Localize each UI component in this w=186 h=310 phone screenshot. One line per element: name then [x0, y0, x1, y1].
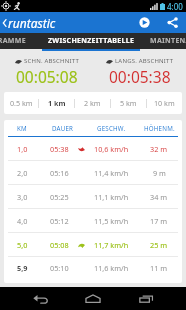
button[interactable]: ZWISCHENZEITTABELLE: [42, 33, 140, 49]
staticText: 1 km: [48, 98, 66, 108]
staticText: 11,1 km/h: [94, 192, 129, 202]
button[interactable]: 1 km: [39, 92, 74, 114]
staticText: 5,9: [17, 263, 28, 273]
staticText: 25 m: [150, 240, 168, 250]
staticText: MAINTENANCE: [150, 36, 186, 46]
staticText: KM: [17, 124, 27, 132]
button[interactable]: 5,0: [4, 233, 182, 256]
staticText: 05:16: [50, 168, 69, 178]
button[interactable]: 1,0: [4, 137, 182, 160]
staticText: ZWISCHENZEITTABELLE: [48, 36, 135, 46]
staticText: 5,0: [17, 240, 28, 250]
staticText: 1,0: [17, 144, 28, 154]
staticText: 32 m: [150, 144, 168, 154]
staticText: 05:10: [50, 263, 69, 273]
button[interactable]: 0.5 km: [4, 92, 38, 114]
button[interactable]: 2,0: [4, 161, 182, 184]
button[interactable]: Home: [77, 287, 109, 310]
staticText: 05:25: [50, 192, 69, 202]
button[interactable]: Recent apps: [130, 287, 162, 310]
button[interactable]: MAINTENANCE: [140, 33, 186, 49]
staticText: GESCHW.: [97, 124, 126, 132]
button[interactable]: 5,9: [4, 257, 182, 279]
button[interactable]: 3,0: [4, 185, 182, 208]
button[interactable]: runtastic: [2, 12, 56, 33]
staticText: LANGS. ABSCHNITT: [115, 57, 174, 65]
staticText: 4:00: [167, 1, 183, 12]
button[interactable]: 10 km: [147, 92, 182, 114]
button[interactable]: 4,0: [4, 209, 182, 232]
staticText: 05:12: [50, 216, 69, 226]
staticText: 10 km: [154, 98, 175, 108]
staticText: 11,4 km/h: [94, 168, 129, 178]
button[interactable]: 2 km: [75, 92, 110, 114]
staticText: 11,6 km/h: [94, 263, 129, 273]
staticText: 4,0: [17, 216, 28, 226]
staticText: 2 km: [84, 98, 101, 108]
staticText: 11,7 km/h: [94, 240, 129, 250]
staticText: 11 m: [150, 263, 168, 273]
button[interactable]: Back: [24, 287, 56, 310]
staticText: 5 km: [120, 98, 137, 108]
staticText: 05:08: [50, 240, 69, 250]
button[interactable]: Cast media: [132, 12, 156, 33]
staticText: HÖHENM.: [144, 124, 175, 132]
staticText: 10,6 km/h: [94, 144, 129, 154]
staticText: DIAGRAMME: [0, 36, 26, 46]
staticText: 11,5 km/h: [94, 216, 129, 226]
staticText: 0.5 km: [10, 98, 33, 108]
button[interactable]: 5 km: [111, 92, 146, 114]
staticText: 3,0: [17, 192, 28, 202]
staticText: SCHN. ABSCHNITT: [24, 57, 79, 65]
button[interactable]: Share: [160, 12, 184, 33]
button[interactable]: DIAGRAMME: [0, 33, 26, 49]
staticText: 9 m: [153, 168, 166, 178]
staticText: 2,0: [17, 168, 28, 178]
staticText: 17 m: [150, 216, 168, 226]
staticText: 05:38: [50, 144, 69, 154]
staticText: runtastic: [8, 15, 56, 31]
staticText: 34 m: [150, 192, 168, 202]
staticText: DAUER: [52, 124, 74, 132]
staticText: 00:05:08: [16, 66, 78, 87]
staticText: 00:05:38: [109, 66, 171, 87]
